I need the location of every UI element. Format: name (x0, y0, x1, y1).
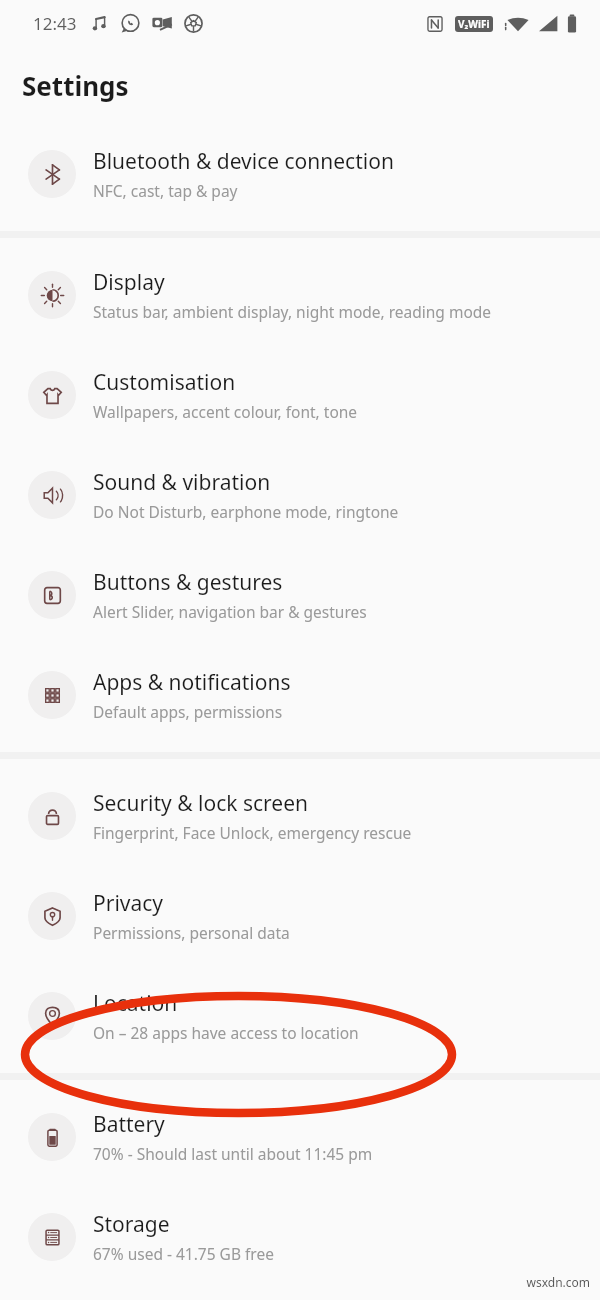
staticText: On – 28 apps have access to location (93, 1022, 359, 1043)
button[interactable]: Security & lock screen (0, 766, 600, 866)
staticText: 67% used - 41.75 GB free (93, 1243, 274, 1264)
staticText: Display (93, 268, 165, 297)
staticText: Sound & vibration (93, 468, 271, 497)
button[interactable]: Buttons & gestures (0, 545, 600, 645)
staticText: Customisation (93, 368, 236, 397)
staticText: Wallpapers, accent colour, font, tone (93, 401, 358, 422)
staticText: Privacy (93, 889, 164, 918)
staticText: V₂WiFi (458, 17, 490, 31)
button[interactable]: Bluetooth & device connection (0, 124, 600, 224)
staticText: Default apps, permissions (93, 701, 283, 722)
staticText: Storage (93, 1210, 170, 1239)
staticText: Fingerprint, Face Unlock, emergency resc… (93, 822, 412, 843)
staticText: 70% - Should last until about 11:45 pm (93, 1143, 373, 1164)
staticText: Settings (22, 68, 129, 103)
button[interactable]: Customisation (0, 345, 600, 445)
staticText: Security & lock screen (93, 789, 309, 818)
staticText: 12:43 (33, 12, 77, 35)
staticText: NFC, cast, tap & pay (93, 180, 238, 201)
staticText: Alert Slider, navigation bar & gestures (93, 601, 367, 622)
button[interactable]: Location (0, 966, 600, 1066)
staticText: Battery (93, 1110, 165, 1139)
button[interactable]: Battery (0, 1087, 600, 1187)
button[interactable]: Sound & vibration (0, 445, 600, 545)
staticText: Status bar, ambient display, night mode,… (93, 301, 492, 322)
staticText: Do Not Disturb, earphone mode, ringtone (93, 501, 399, 522)
staticText: Location (93, 989, 178, 1018)
staticText: wsxdn.com (526, 1274, 590, 1290)
button[interactable]: Privacy (0, 866, 600, 966)
button[interactable]: Display (0, 245, 600, 345)
staticText: Buttons & gestures (93, 568, 283, 597)
button[interactable]: Storage (0, 1187, 600, 1287)
staticText: Permissions, personal data (93, 922, 290, 943)
staticText: Bluetooth & device connection (93, 147, 394, 176)
staticText: Apps & notifications (93, 668, 291, 697)
button[interactable]: Apps & notifications (0, 645, 600, 745)
